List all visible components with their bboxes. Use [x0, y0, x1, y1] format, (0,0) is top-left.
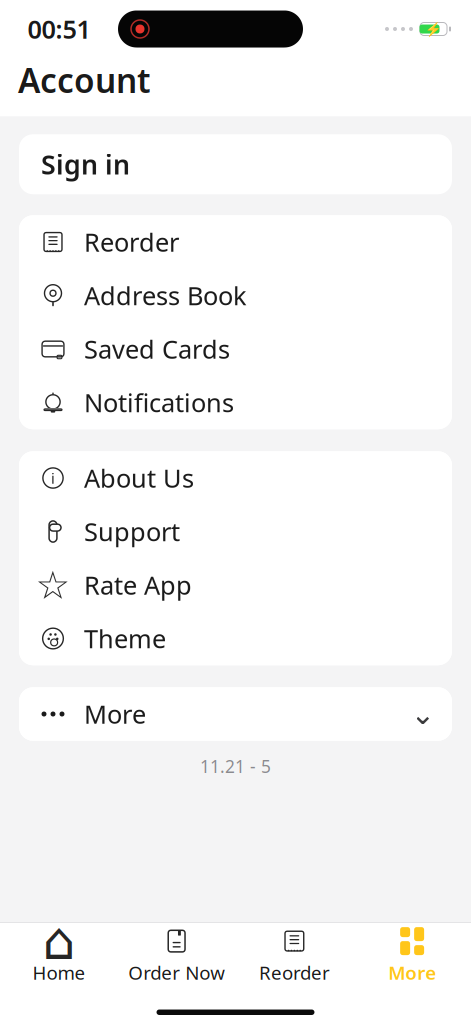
staticText: ⌄	[410, 697, 435, 731]
button[interactable]: More	[19, 687, 452, 741]
staticText: Home	[32, 960, 85, 985]
staticText: ☆	[35, 563, 70, 607]
staticText: Saved Cards	[84, 332, 230, 366]
button[interactable]: Order Now	[118, 917, 236, 991]
staticText: i	[51, 468, 55, 488]
staticText: Account	[18, 58, 151, 102]
button[interactable]: i	[19, 451, 452, 505]
button[interactable]: Theme	[19, 612, 452, 665]
staticText: Support	[84, 515, 180, 548]
staticText: 00:51	[27, 12, 90, 46]
button[interactable]: ⌂	[0, 917, 118, 991]
staticText: Rate App	[84, 568, 192, 602]
staticText: Sign in	[41, 147, 130, 182]
staticText: More	[388, 960, 436, 985]
button[interactable]: Reorder	[19, 215, 452, 269]
staticText: Reorder	[84, 225, 179, 259]
button[interactable]: More	[353, 917, 471, 991]
staticText: Reorder	[259, 960, 330, 985]
staticText: Notifications	[84, 386, 234, 419]
button[interactable]: Sign in	[19, 134, 452, 194]
staticText: Order Now	[128, 960, 225, 985]
staticText: Address Book	[84, 279, 247, 312]
staticText: 11.21 - 5	[200, 755, 271, 778]
button[interactable]: Notifications	[19, 376, 452, 429]
staticText: ⚡	[425, 21, 442, 37]
staticText: Theme	[84, 622, 166, 655]
staticText: About Us	[84, 461, 194, 495]
staticText: ⌂	[42, 912, 75, 971]
button[interactable]: ☆	[19, 558, 452, 612]
staticText: More	[84, 697, 146, 731]
button[interactable]: Saved Cards	[19, 322, 452, 376]
button[interactable]: Address Book	[19, 269, 452, 322]
button[interactable]: Reorder	[235, 917, 353, 991]
button[interactable]: Support	[19, 505, 452, 558]
